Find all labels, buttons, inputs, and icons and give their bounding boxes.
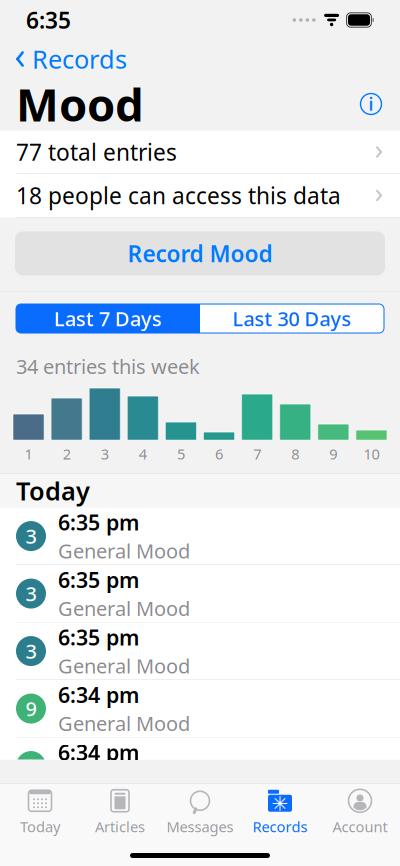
staticText: ✳ [271, 792, 288, 815]
button[interactable]: 18 people can access this data [0, 174, 400, 217]
staticText: 4 [139, 444, 147, 464]
staticText: General Mood [58, 652, 190, 679]
button[interactable]: Today [0, 787, 80, 836]
staticText: General Mood [58, 767, 190, 794]
staticText: Last 30 Days [232, 305, 351, 332]
staticText: 34 entries this week [16, 353, 200, 380]
staticText: 6:35 pm [58, 623, 139, 651]
staticText: Account [332, 817, 387, 836]
staticText: 10 [363, 444, 379, 464]
staticText: Records [252, 817, 307, 836]
staticText: 6:34 pm [58, 681, 139, 709]
staticText: i [368, 92, 373, 115]
button[interactable]: 9 [0, 738, 400, 795]
staticText: General Mood [58, 710, 190, 736]
button[interactable]: 3 [0, 565, 400, 622]
staticText: 6:35 pm [58, 508, 139, 536]
staticText: Last 7 Days [54, 305, 162, 332]
staticText: 8 [291, 444, 299, 464]
staticText: 9 [25, 695, 36, 722]
staticText: 6 [215, 444, 223, 464]
button[interactable]: Messages [160, 787, 240, 836]
button[interactable]: Last 7 Days [16, 304, 200, 333]
staticText: 5 [177, 444, 185, 464]
staticText: 3 [101, 444, 109, 464]
staticText: 9 [25, 753, 36, 779]
button[interactable]: Information [354, 87, 388, 121]
button[interactable]: Records [2, 36, 139, 82]
button[interactable]: Record Mood [15, 231, 385, 275]
staticText: 77 total entries [16, 137, 177, 167]
staticText: 7 [253, 444, 261, 464]
staticText: Articles [95, 817, 145, 836]
button[interactable]: 3 [0, 623, 400, 680]
button[interactable]: 3 [0, 508, 400, 565]
staticText: General Mood [58, 595, 190, 621]
staticText: 18 people can access this data [16, 180, 341, 210]
staticText: Messages [166, 817, 233, 836]
staticText: Today [16, 474, 90, 507]
button[interactable]: Last 30 Days [200, 304, 384, 333]
staticText: Record Mood [127, 238, 272, 268]
staticText: General Mood [58, 537, 190, 564]
staticText: 6:35 [26, 5, 71, 35]
staticText: Mood [16, 74, 144, 134]
staticText: 1 [25, 444, 33, 464]
button[interactable]: Articles [80, 787, 160, 836]
staticText: 6:34 pm [58, 738, 139, 766]
staticText: 3 [25, 523, 36, 549]
button[interactable]: 9 [0, 680, 400, 737]
staticText: 9 [329, 444, 337, 464]
staticText: 3 [25, 638, 36, 664]
button[interactable]: Account [320, 787, 400, 836]
button[interactable]: ✳ [240, 787, 320, 836]
staticText: Today [20, 817, 60, 836]
staticText: Records [32, 42, 127, 76]
staticText: 2 [63, 444, 71, 464]
staticText: 6:35 pm [58, 566, 139, 594]
staticText: 3 [25, 580, 36, 607]
button[interactable]: 77 total entries [0, 130, 400, 173]
